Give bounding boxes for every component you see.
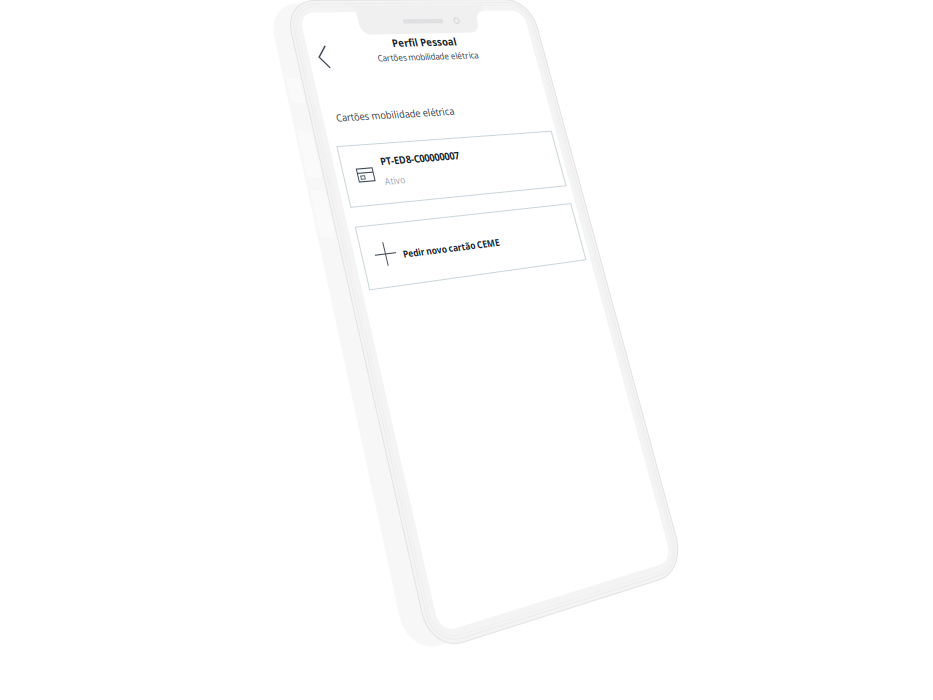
button[interactable]: PT-ED8-C00000007 — [0, 0, 933, 700]
staticText: Ativo — [392, 176, 424, 194]
staticText: Cartões mobilidade elétrica — [393, 53, 561, 71]
button[interactable]: Voltar — [0, 0, 933, 700]
staticText: Perfil Pessoal — [415, 37, 523, 58]
staticText: Cartões mobilidade elétrica — [348, 112, 536, 132]
staticText: PT-ED8-C00000007 — [393, 156, 520, 176]
button[interactable]: Pedir novo cartão CEME — [0, 0, 933, 700]
staticText: Pedir novo cartão CEME — [414, 250, 569, 268]
